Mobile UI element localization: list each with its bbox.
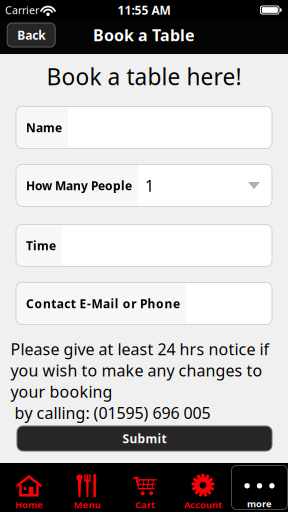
staticText: Carrier xyxy=(5,3,39,17)
button[interactable]: Home xyxy=(0,463,58,512)
button[interactable]: Submit xyxy=(17,426,272,451)
staticText: Name xyxy=(26,119,62,135)
button[interactable]: How Many People xyxy=(16,164,272,206)
button[interactable]: Time xyxy=(16,224,272,266)
button[interactable]: more xyxy=(231,465,287,509)
staticText: Cart xyxy=(135,498,155,511)
button[interactable]: Account xyxy=(174,463,232,512)
staticText: your booking xyxy=(10,381,112,402)
staticText: more xyxy=(247,497,272,510)
button[interactable]: Name xyxy=(16,106,272,148)
button[interactable]: Contact E-Mail or Phone xyxy=(16,282,272,324)
staticText: Book a table here! xyxy=(46,61,241,91)
staticText: 11:55 AM xyxy=(117,2,170,18)
staticText: Home xyxy=(15,498,43,511)
staticText: Book a Table xyxy=(93,24,195,46)
staticText: Account xyxy=(184,498,222,511)
staticText: by calling: (01595) 696 005 xyxy=(10,402,210,423)
button[interactable]: Back xyxy=(7,23,55,47)
staticText: How Many People xyxy=(26,177,132,193)
button[interactable]: Menu xyxy=(58,463,116,512)
staticText: you wish to make any changes to xyxy=(10,360,262,381)
staticText: Time xyxy=(26,237,56,253)
staticText: Contact E-Mail or Phone xyxy=(26,295,180,311)
staticText: Menu xyxy=(73,498,100,511)
staticText: 1 xyxy=(145,175,154,196)
staticText: Please give at least 24 hrs notice if xyxy=(10,338,269,360)
button[interactable]: Cart xyxy=(116,463,174,512)
staticText: Back xyxy=(17,27,45,43)
staticText: Submit xyxy=(122,430,166,446)
